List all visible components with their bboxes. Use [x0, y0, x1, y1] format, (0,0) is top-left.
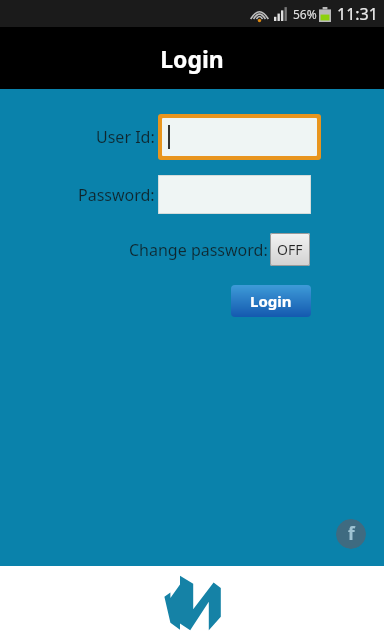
staticText: Login: [250, 291, 292, 311]
button[interactable]: [162, 118, 317, 156]
staticText: 56%: [293, 6, 317, 22]
staticText: f: [348, 522, 355, 545]
staticText: 11:31: [337, 3, 378, 25]
staticText: OFF: [277, 240, 303, 259]
button[interactable]: OFF: [270, 233, 310, 266]
button[interactable]: Login: [231, 285, 311, 317]
button[interactable]: Sign in with Facebook: [336, 519, 366, 549]
staticText: Change password:: [129, 239, 268, 261]
staticText: Login: [160, 43, 224, 74]
button[interactable]: [158, 175, 311, 214]
staticText: User Id:: [96, 126, 155, 148]
staticText: Password:: [78, 184, 155, 206]
